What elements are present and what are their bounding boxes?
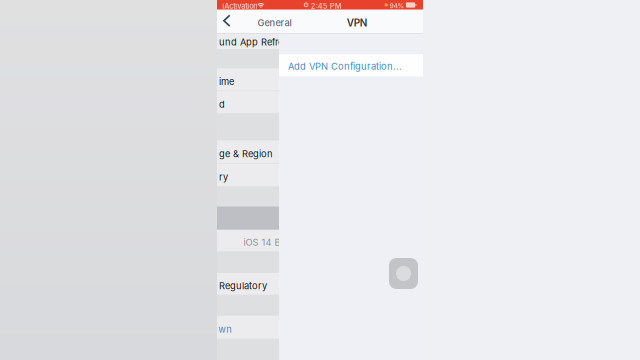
button[interactable]: [217, 316, 279, 339]
button[interactable]: Back: [217, 11, 239, 31]
button[interactable]: und App Refre: [217, 33, 279, 50]
staticText: ry: [219, 171, 228, 183]
staticText: Add VPN Configuration...: [288, 61, 402, 72]
staticText: d: [219, 99, 225, 110]
staticText: Regulatory: [219, 280, 267, 291]
button[interactable]: Add VPN Configuration...: [279, 54, 423, 76]
staticText: 2:45 PM: [311, 2, 342, 10]
staticText: ime: [219, 76, 234, 87]
staticText: ge & Region: [219, 148, 273, 159]
button[interactable]: [217, 230, 279, 252]
staticText: General: [257, 17, 291, 29]
button[interactable]: ge & Region: [217, 140, 279, 164]
staticText: 94%: [390, 2, 405, 10]
button[interactable]: ry: [217, 164, 279, 187]
staticText: wn: [218, 324, 232, 335]
staticText: VPN: [347, 17, 368, 29]
staticText: und App Refre: [219, 36, 283, 48]
staticText: iOS 14 B: [244, 237, 281, 248]
button[interactable]: Regulatory: [217, 273, 279, 295]
button[interactable]: ime: [217, 68, 279, 91]
button[interactable]: AssistiveTouch: [389, 258, 418, 289]
button[interactable]: d: [217, 91, 279, 114]
staticText: iActivation: [222, 2, 257, 10]
